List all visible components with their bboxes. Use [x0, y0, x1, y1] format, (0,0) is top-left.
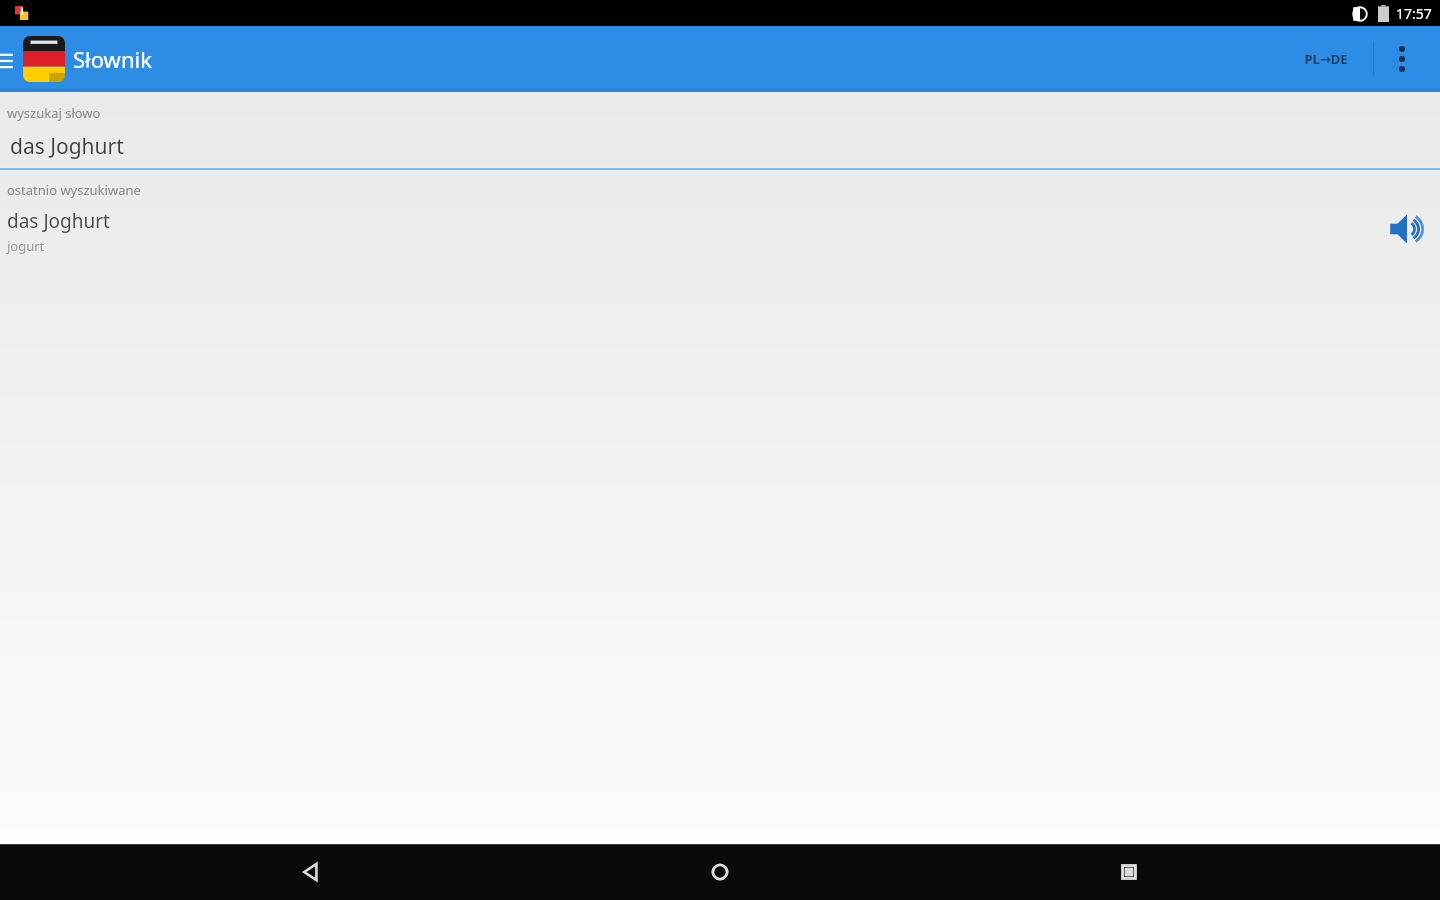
staticText: das Joghurt — [7, 208, 110, 234]
staticText: wyszukaj słowo — [7, 104, 101, 122]
button[interactable]: das Joghurt — [0, 122, 1440, 170]
staticText: das Joghurt — [10, 132, 124, 161]
button[interactable]: More options — [1380, 37, 1424, 81]
staticText: ostatnio wyszukiwane — [7, 181, 141, 199]
button[interactable]: Play pronunciation — [1379, 201, 1435, 257]
button[interactable]: PL→DE — [1290, 34, 1362, 84]
staticText: Słownik — [73, 44, 152, 74]
button[interactable]: Recent apps — [1103, 846, 1155, 898]
button[interactable]: Open navigation drawer — [0, 44, 30, 74]
button[interactable]: Back — [285, 846, 337, 898]
staticText: 17:57 — [1396, 4, 1432, 23]
staticText: jogurt — [7, 237, 45, 255]
button[interactable]: Language German — [21, 34, 67, 84]
button[interactable]: das Joghurt — [0, 199, 1440, 259]
staticText: PL→DE — [1304, 50, 1348, 68]
button[interactable]: Home — [694, 846, 746, 898]
